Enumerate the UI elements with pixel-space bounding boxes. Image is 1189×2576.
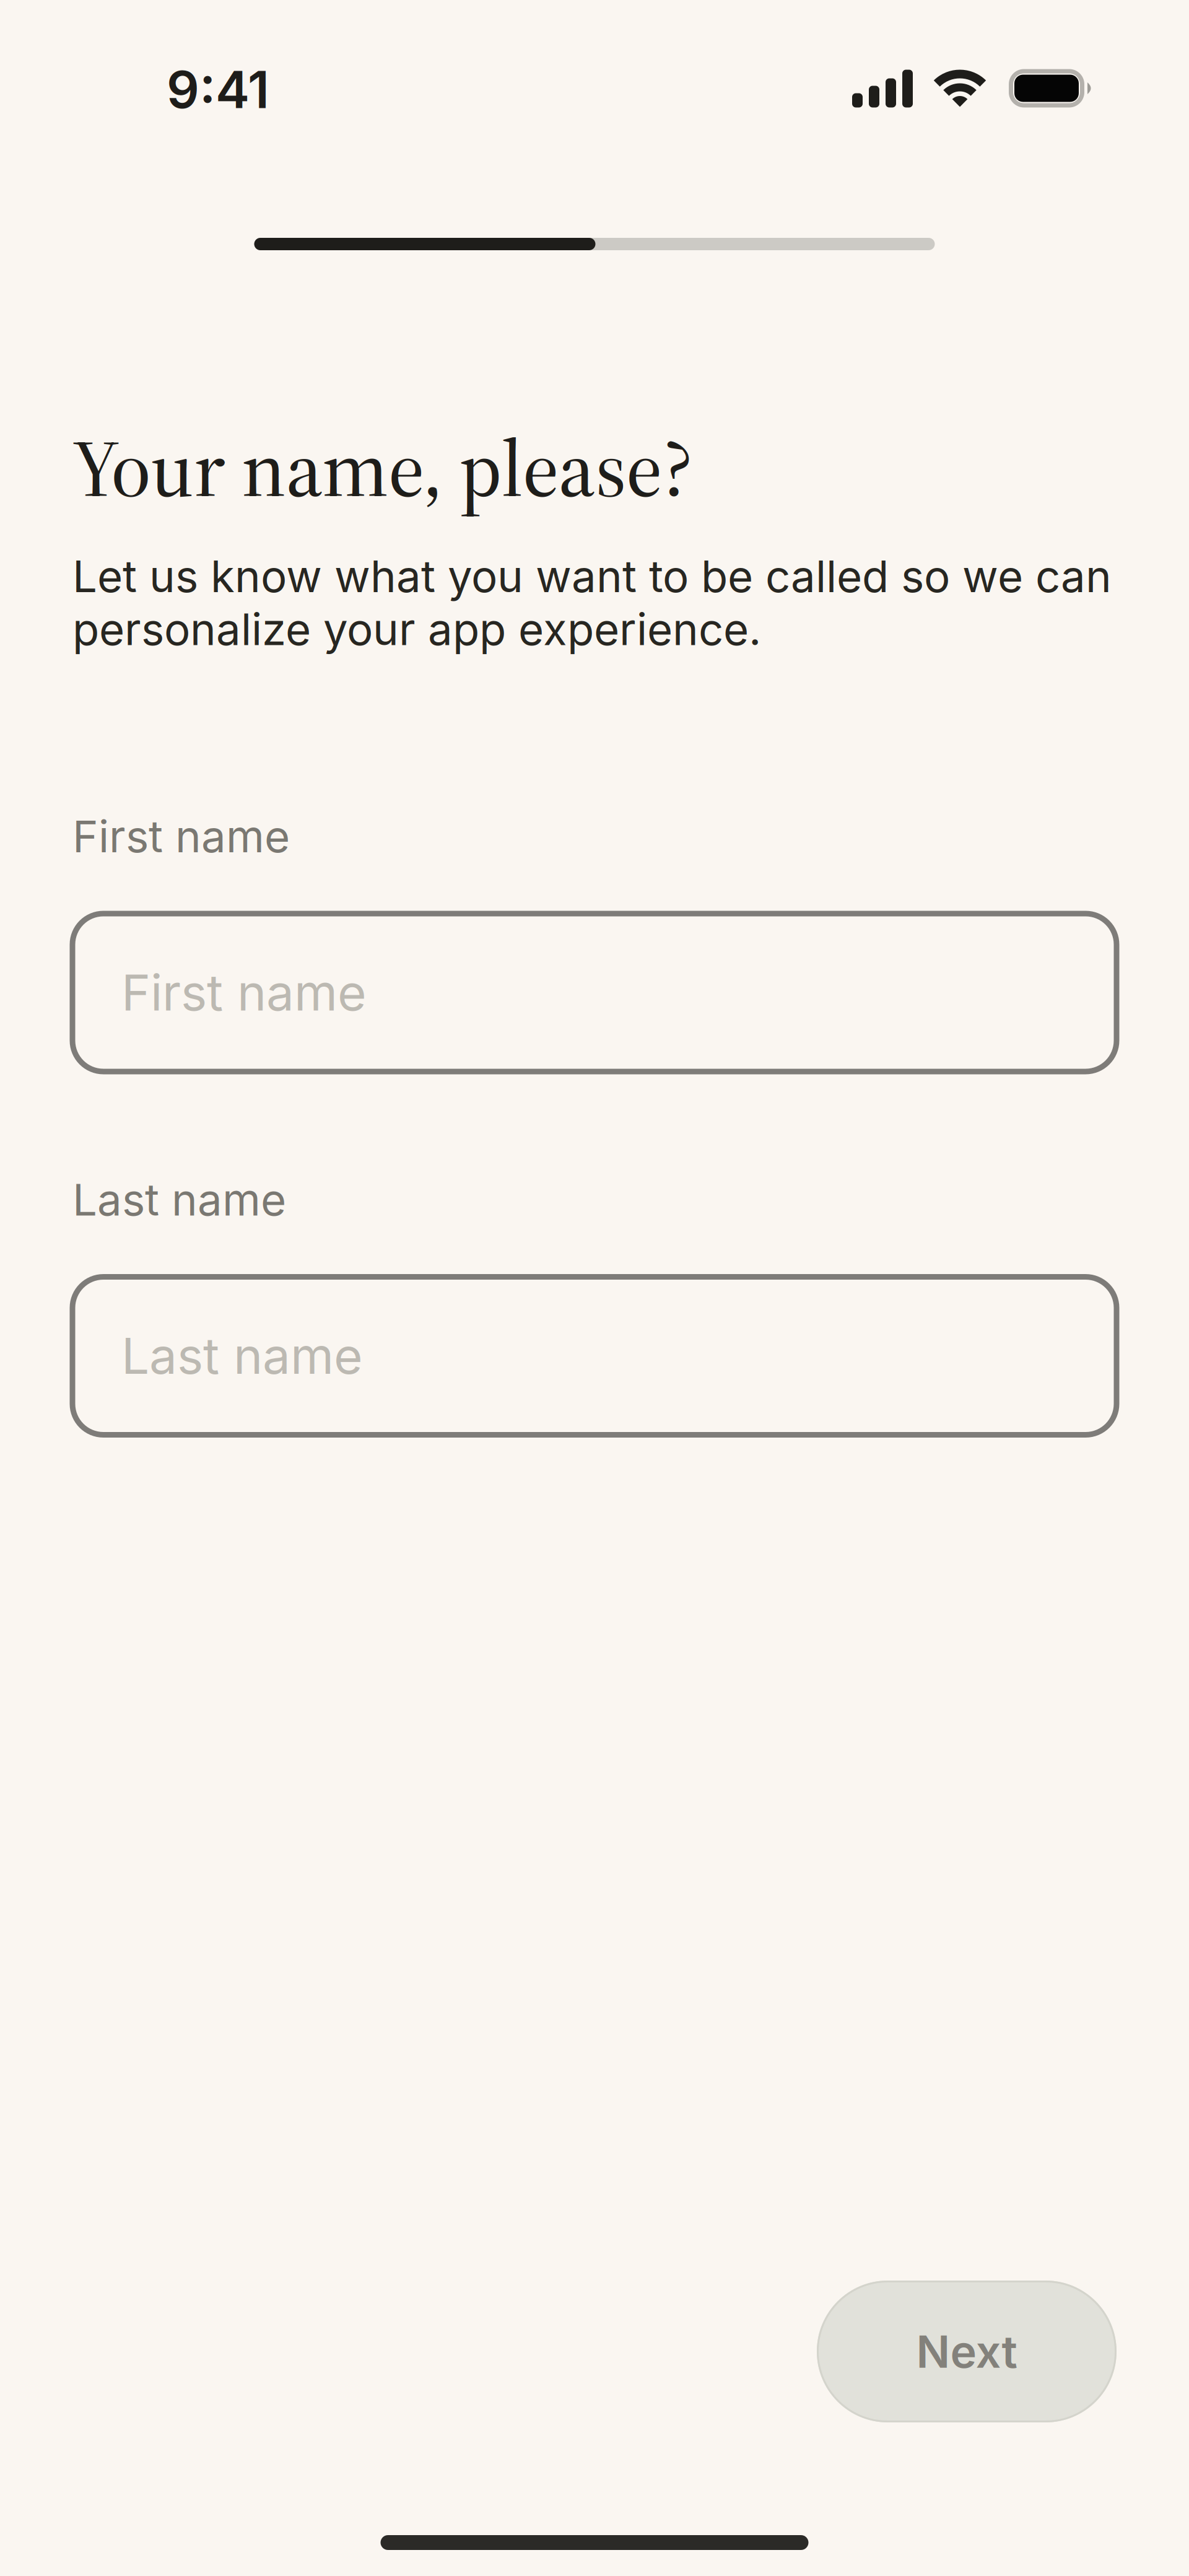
staticText: 9:41 — [167, 59, 269, 120]
staticText: First name — [121, 963, 367, 1023]
staticText: Your name, please? — [72, 414, 694, 522]
staticText: Next — [916, 2324, 1017, 2378]
button[interactable]: Last name — [72, 1277, 1117, 1435]
staticText: First name — [72, 810, 290, 863]
staticText: Let us know what you want to be called s… — [72, 550, 1112, 656]
staticText: Last name — [72, 1173, 286, 1226]
button[interactable]: Next — [817, 2281, 1117, 2422]
button[interactable]: First name — [72, 914, 1117, 1072]
staticText: Last name — [121, 1326, 363, 1386]
